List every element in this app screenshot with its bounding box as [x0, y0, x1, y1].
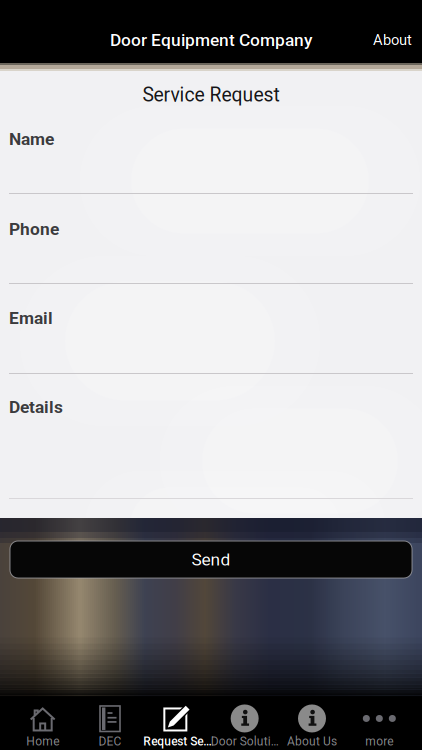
- staticText: Send: [191, 549, 230, 570]
- staticText: Door Soluti…: [211, 734, 279, 749]
- button[interactable]: Door Soluti…: [211, 697, 278, 750]
- staticText: Phone: [9, 219, 59, 239]
- button[interactable]: About: [373, 15, 422, 48]
- staticText: DEC: [98, 734, 121, 749]
- staticText: Email: [9, 308, 53, 328]
- staticText: About: [373, 31, 412, 49]
- button[interactable]: Send: [10, 541, 412, 578]
- staticText: Request Se…: [143, 734, 211, 749]
- staticText: Name: [9, 129, 54, 149]
- staticText: more: [365, 734, 393, 749]
- staticText: Door Equipment Company: [110, 30, 312, 50]
- button[interactable]: About Us: [278, 697, 346, 750]
- button[interactable]: Home: [9, 697, 76, 750]
- staticText: About Us: [287, 734, 337, 749]
- staticText: Home: [26, 734, 59, 749]
- button[interactable]: Request Se…: [144, 697, 211, 750]
- button[interactable]: more: [346, 697, 413, 750]
- button[interactable]: DEC: [76, 697, 144, 750]
- staticText: Service Request: [142, 84, 279, 106]
- staticText: Details: [9, 397, 63, 417]
